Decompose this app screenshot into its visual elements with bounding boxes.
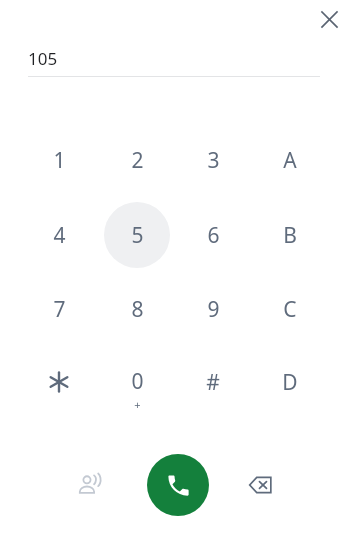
button[interactable]: 2 [104, 127, 170, 193]
button[interactable]: 4 [26, 202, 92, 268]
button[interactable]: 5 [104, 202, 170, 268]
staticText: 1 [53, 146, 66, 175]
staticText: B [283, 221, 297, 250]
staticText: 4 [53, 221, 66, 250]
button[interactable]: 6 [180, 202, 246, 268]
staticText: 105 [28, 47, 58, 70]
staticText: 5 [131, 221, 144, 250]
button[interactable]: Backspace [232, 457, 288, 513]
button[interactable]: # [180, 349, 246, 415]
button[interactable]: 0 [104, 349, 170, 415]
staticText: 2 [131, 146, 144, 175]
staticText: 6 [207, 221, 220, 250]
button[interactable]: A [257, 127, 323, 193]
button[interactable]: B [257, 202, 323, 268]
button[interactable]: D [257, 349, 323, 415]
staticText: 7 [53, 295, 66, 324]
staticText: 0 [131, 367, 144, 396]
staticText: C [283, 295, 297, 324]
button[interactable]: 3 [180, 127, 246, 193]
button[interactable]: C [257, 276, 323, 342]
button[interactable]: 8 [104, 276, 170, 342]
button[interactable]: 1 [26, 127, 92, 193]
staticText: 3 [207, 146, 220, 175]
button[interactable]: Call [147, 454, 209, 516]
button[interactable]: 9 [180, 276, 246, 342]
button[interactable] [26, 349, 92, 415]
staticText: + [134, 397, 141, 412]
staticText: A [283, 146, 297, 175]
staticText: 8 [131, 295, 144, 324]
button[interactable]: Close [310, 0, 348, 38]
staticText: # [206, 368, 220, 397]
staticText: 9 [207, 295, 220, 324]
staticText: D [282, 368, 298, 397]
button[interactable]: Voice dial [62, 457, 118, 513]
button[interactable]: 7 [26, 276, 92, 342]
